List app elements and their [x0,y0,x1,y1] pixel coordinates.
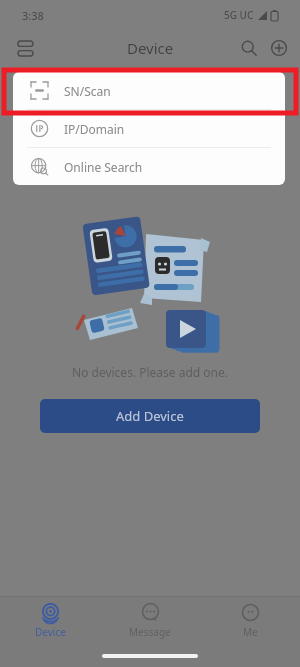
button[interactable]: Menu [10,33,40,63]
button[interactable]: Me [200,597,300,645]
button[interactable]: SN/Scan [13,72,285,109]
staticText: Me [243,625,258,639]
staticText: Message [129,625,171,639]
staticText: Device [127,38,174,58]
staticText: 3:38 [22,8,44,23]
staticText: Add Device [116,407,184,425]
staticText: 5G UC [224,8,254,22]
button[interactable]: Add Device [40,399,260,433]
button[interactable]: Search [234,33,264,63]
staticText: SN/Scan [64,83,111,99]
staticText: Online Search [64,159,143,175]
staticText: Device [35,625,66,639]
button[interactable]: IP/Domain [13,110,285,147]
button[interactable]: Device [0,597,100,645]
button[interactable]: Message [100,597,200,645]
staticText: No devices. Please add one. [72,364,228,380]
button[interactable]: Add [264,33,294,63]
button[interactable]: Online Search [13,148,285,185]
staticText: IP/Domain [64,121,125,137]
